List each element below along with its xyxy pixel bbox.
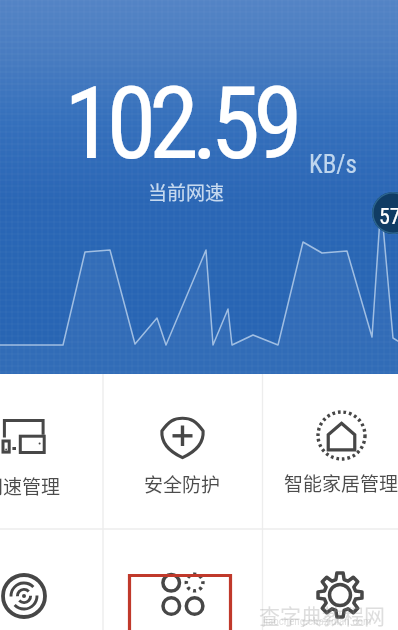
staticText: 当前网速	[148, 178, 225, 206]
button[interactable]: Settings	[263, 529, 398, 630]
button[interactable]: Security	[103, 374, 262, 529]
button[interactable]: Signal strength 57	[372, 192, 398, 234]
staticText: 102.59	[64, 64, 296, 182]
button[interactable]: Wi-Fi signal	[0, 529, 103, 630]
staticText: 安全防护	[144, 470, 221, 498]
staticText: 57	[379, 204, 398, 230]
staticText: 查字典教程网	[259, 600, 385, 630]
staticText: 智能家居管理	[284, 469, 398, 497]
staticText: 网速管理	[0, 472, 61, 500]
staticText: jiaocheng.chazidian.com	[263, 615, 372, 628]
button[interactable]: Bandwidth manager	[0, 374, 103, 529]
button[interactable]: Devices	[103, 529, 262, 630]
button[interactable]: Smart home	[263, 374, 398, 529]
staticText: KB/s	[309, 150, 357, 179]
